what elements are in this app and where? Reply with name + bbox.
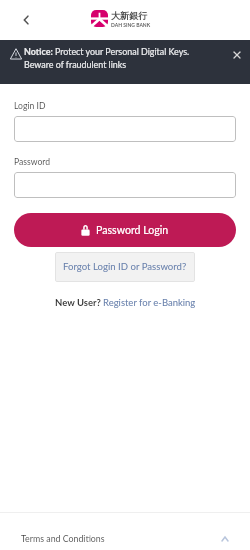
- button[interactable]: Terms and Conditions: [0, 513, 250, 550]
- button[interactable]: Close notice: [227, 45, 246, 64]
- button[interactable]: [14, 116, 236, 142]
- button[interactable]: [14, 172, 236, 198]
- staticText: Notice: Protect your Personal Digital Ke…: [24, 46, 190, 57]
- staticText: Password Login: [96, 224, 169, 237]
- staticText: New User?: [55, 297, 101, 308]
- staticText: Password: [14, 157, 51, 167]
- staticText: Terms and Conditions: [21, 533, 105, 544]
- staticText: 大新銀行: [111, 10, 147, 21]
- staticText: Beware of fraudulent links: [24, 59, 127, 70]
- button[interactable]: Register for e-Banking: [103, 297, 196, 308]
- staticText: Register for e-Banking: [103, 297, 196, 308]
- other: Expand terms and conditions: [219, 533, 231, 545]
- staticText: DAH SING BANK: [111, 22, 151, 28]
- button[interactable]: Forgot Login ID or Password?: [55, 252, 195, 282]
- button[interactable]: Password Login: [14, 213, 236, 247]
- staticText: Forgot Login ID or Password?: [63, 261, 187, 273]
- staticText: Login ID: [14, 101, 46, 111]
- button[interactable]: Back: [12, 6, 39, 33]
